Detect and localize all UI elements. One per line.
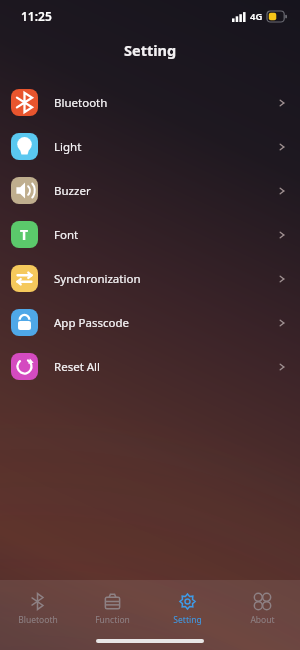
staticText: Bluetooth <box>18 614 58 626</box>
staticText: Setting <box>173 614 202 626</box>
button[interactable]: T <box>0 212 300 256</box>
staticText: Synchronization <box>54 271 277 287</box>
staticText: Bluetooth <box>54 95 277 111</box>
staticText: T <box>20 225 29 244</box>
button[interactable]: Reset All <box>0 344 300 388</box>
staticText: Function <box>95 614 130 626</box>
button[interactable]: Bluetooth <box>0 587 75 630</box>
button[interactable]: Light <box>0 124 300 168</box>
staticText: Buzzer <box>54 183 277 199</box>
button[interactable]: Setting <box>150 587 225 630</box>
button[interactable]: Buzzer <box>0 168 300 212</box>
staticText: Setting <box>124 40 177 60</box>
button[interactable]: Function <box>75 587 150 630</box>
button[interactable]: App Passcode <box>0 300 300 344</box>
button[interactable]: About <box>225 587 300 630</box>
staticText: 4G <box>250 10 263 23</box>
staticText: App Passcode <box>54 315 277 331</box>
staticText: Light <box>54 139 277 155</box>
staticText: About <box>250 614 275 626</box>
staticText: 11:25 <box>21 8 52 24</box>
button[interactable]: Synchronization <box>0 256 300 300</box>
staticText: Reset All <box>54 359 277 375</box>
staticText: Font <box>54 227 277 243</box>
button[interactable]: Bluetooth <box>0 80 300 124</box>
